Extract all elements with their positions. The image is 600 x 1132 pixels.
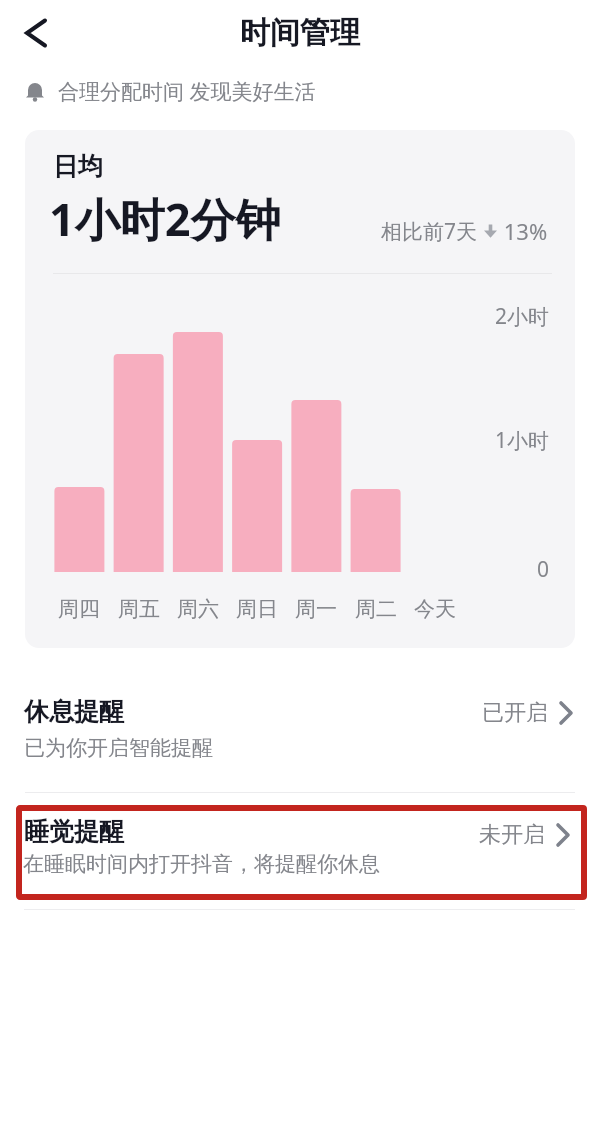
staticText: 时间管理: [240, 14, 360, 52]
staticText: 1小时: [495, 426, 550, 455]
staticText: 周日: [236, 596, 278, 622]
staticText: 今天: [414, 596, 456, 622]
staticText: 休息提醒: [24, 696, 124, 727]
staticText: 1小时2分钟: [49, 188, 281, 249]
staticText: 未开启: [479, 821, 545, 849]
staticText: 日均: [53, 151, 103, 182]
staticText: 已为你开启智能提醒: [24, 735, 213, 761]
staticText: 合理分配时间 发现美好生活: [58, 77, 316, 106]
staticText: 睡觉提醒: [24, 816, 124, 847]
staticText: 已开启: [482, 699, 548, 727]
staticText: 相比前7天: [381, 217, 483, 246]
staticText: 2小时: [495, 302, 550, 331]
staticText: 周四: [58, 596, 100, 622]
staticText: 周一: [295, 596, 337, 622]
staticText: 在睡眠时间内打开抖音，将提醒你休息: [23, 851, 380, 877]
staticText: 周六: [177, 596, 219, 622]
button[interactable]: 睡觉提醒: [16, 805, 587, 900]
button[interactable]: [12, 9, 60, 57]
staticText: 周二: [355, 596, 397, 622]
staticText: 周五: [118, 596, 160, 622]
staticText: 0: [537, 555, 550, 584]
button[interactable]: 休息提醒: [0, 688, 600, 780]
staticText: 13%: [498, 216, 548, 246]
